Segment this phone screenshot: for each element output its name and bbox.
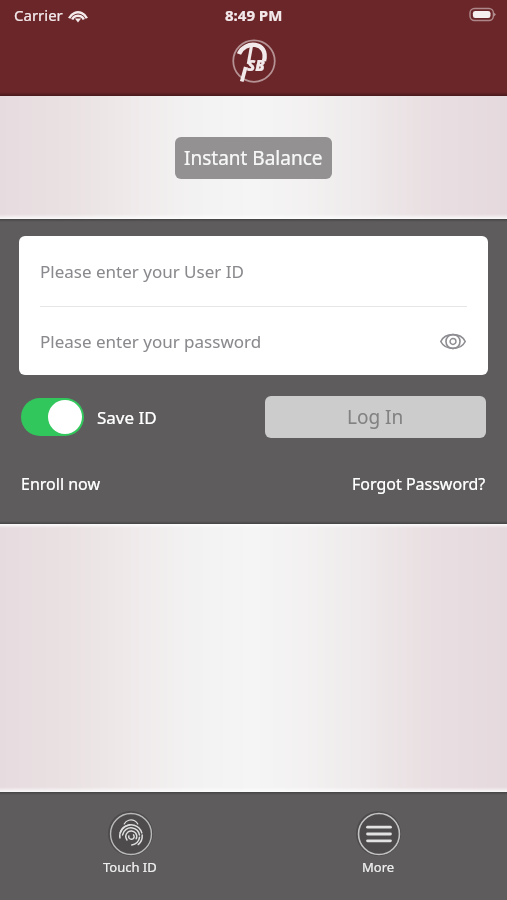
staticText: More <box>362 858 395 876</box>
staticText: SB <box>247 55 265 75</box>
staticText: Please enter your User ID <box>40 260 244 283</box>
staticText: Carrier <box>14 5 63 25</box>
button[interactable]: Show password <box>433 321 473 361</box>
staticText: Instant Balance <box>184 145 323 171</box>
staticText: Touch ID <box>103 858 157 876</box>
staticText: Forgot Password? <box>352 473 486 495</box>
staticText: 8:49 PM <box>225 5 283 25</box>
button[interactable]: Touch ID <box>86 809 174 878</box>
button[interactable]: Please enter your password <box>19 307 488 375</box>
staticText: Save ID <box>97 406 157 429</box>
button[interactable]: More <box>334 809 422 878</box>
button[interactable]: Enroll now <box>21 473 100 495</box>
button[interactable]: Instant Balance <box>175 137 332 179</box>
button[interactable]: Please enter your User ID <box>19 236 488 306</box>
staticText: Log In <box>347 404 404 430</box>
button[interactable]: Forgot Password? <box>352 473 486 495</box>
button[interactable]: Log In <box>265 396 486 438</box>
staticText: Please enter your password <box>40 330 262 353</box>
staticText: Enroll now <box>21 473 100 495</box>
button[interactable]: Save ID <box>21 398 157 436</box>
